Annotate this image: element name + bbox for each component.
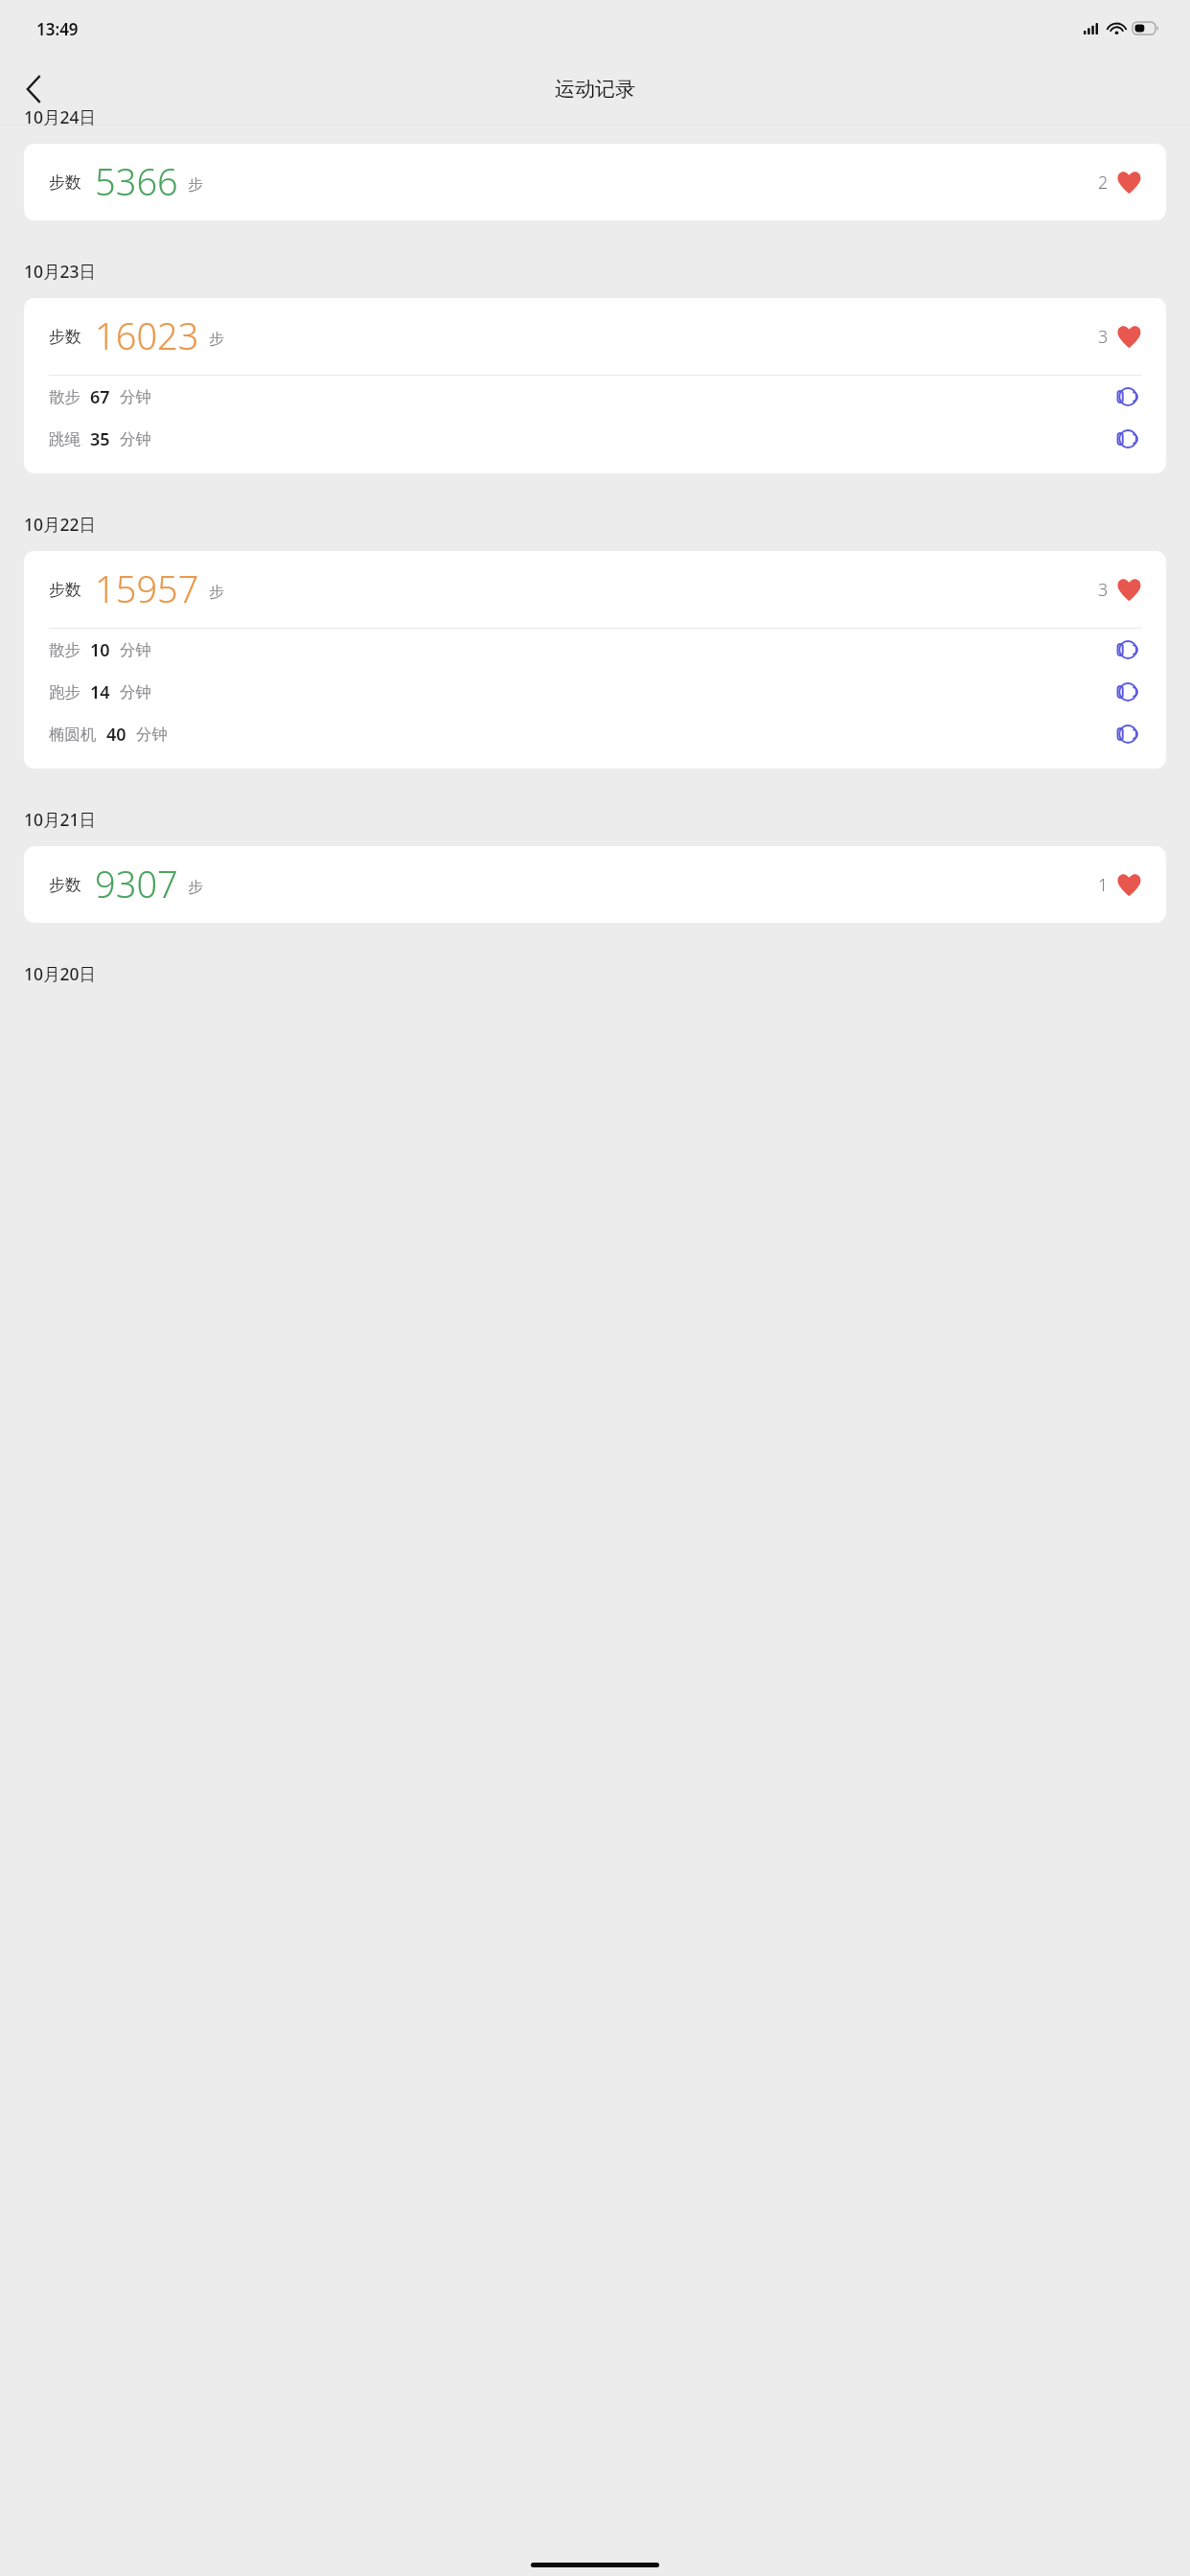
staticText: 13:49 (36, 18, 79, 40)
other: 手表记录 (1116, 722, 1141, 747)
staticText: 5366 (95, 156, 178, 206)
other: 手表记录 (1116, 679, 1141, 704)
button[interactable]: 跳绳 (24, 418, 1166, 460)
staticText: 步数 (49, 875, 81, 895)
button[interactable]: 返回 (7, 62, 60, 116)
staticText: 10月23日 (24, 260, 97, 283)
staticText: 10 (90, 638, 110, 662)
staticText: 10月21日 (24, 808, 97, 831)
staticText: 10月20日 (24, 962, 97, 985)
staticText: 步 (188, 175, 203, 195)
button[interactable]: 步数 (24, 551, 1166, 769)
staticText: 2 (1098, 171, 1109, 195)
other: 手表记录 (1116, 637, 1141, 662)
staticText: 散步 (49, 387, 80, 407)
button[interactable]: 步数 (24, 846, 1166, 923)
staticText: 10月24日 (24, 105, 97, 128)
button[interactable]: 散步 (24, 376, 1166, 418)
staticText: 3 (1098, 578, 1109, 602)
staticText: 运动记录 (555, 77, 635, 102)
staticText: 步 (209, 330, 224, 349)
staticText: 步数 (49, 172, 81, 193)
staticText: 步 (209, 583, 224, 602)
staticText: 10月22日 (24, 513, 97, 536)
staticText: 1 (1098, 873, 1109, 897)
button[interactable]: 椭圆机 (24, 713, 1166, 755)
button[interactable]: 跑步 (24, 671, 1166, 713)
staticText: 15957 (95, 563, 199, 613)
staticText: 67 (90, 385, 110, 409)
other: 手表记录 (1116, 426, 1141, 451)
staticText: 9307 (95, 859, 178, 908)
other: 手表记录 (1116, 384, 1141, 409)
staticText: 分钟 (120, 682, 151, 702)
button[interactable]: 步数 (24, 298, 1166, 473)
staticText: 14 (90, 680, 110, 704)
staticText: 步数 (49, 327, 81, 347)
staticText: 椭圆机 (49, 724, 97, 745)
staticText: 40 (106, 723, 126, 747)
staticText: 分钟 (120, 640, 151, 660)
staticText: 16023 (95, 310, 199, 360)
staticText: 跳绳 (49, 429, 80, 449)
staticText: 分钟 (120, 387, 151, 407)
staticText: 步数 (49, 580, 81, 600)
staticText: 步 (188, 878, 203, 897)
staticText: 35 (90, 427, 110, 451)
staticText: 分钟 (136, 724, 168, 745)
staticText: 散步 (49, 640, 80, 660)
button[interactable]: 散步 (24, 629, 1166, 671)
staticText: 分钟 (120, 429, 151, 449)
staticText: 3 (1098, 325, 1109, 349)
staticText: 跑步 (49, 682, 80, 702)
button[interactable]: 步数 (24, 144, 1166, 220)
